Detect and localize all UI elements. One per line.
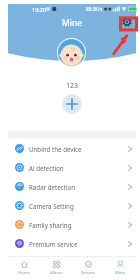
button[interactable]: Settings — [122, 17, 132, 27]
staticText: Ai detection — [29, 164, 64, 172]
staticText: Unbind the device — [29, 145, 82, 153]
button[interactable]: Camera Setting — [8, 196, 136, 215]
staticText: Camera Setting — [29, 202, 74, 210]
button[interactable]: Unbind the device — [8, 139, 136, 158]
button[interactable]: Mine — [104, 257, 136, 280]
staticText: Mine — [115, 270, 125, 276]
button[interactable]: Radar detection — [8, 177, 136, 196]
staticText: Mine — [62, 17, 82, 29]
staticText: Album — [50, 270, 63, 276]
button[interactable]: Home — [8, 257, 40, 280]
button[interactable]: Service — [72, 257, 104, 280]
staticText: 89.3K/s — [86, 6, 102, 12]
staticText: 123 — [66, 81, 79, 91]
button[interactable]: Add device — [62, 94, 82, 114]
button[interactable]: Album — [40, 257, 72, 280]
button[interactable]: Ai detection — [8, 158, 136, 177]
button[interactable]: Family sharing — [8, 215, 136, 234]
staticText: Premium service — [29, 240, 78, 248]
staticText: Service — [81, 270, 95, 276]
staticText: Radar detection — [29, 183, 76, 191]
staticText: Home — [18, 270, 30, 276]
staticText: Family sharing — [29, 221, 72, 229]
staticText: 10:20 — [32, 6, 47, 13]
button[interactable]: Premium service — [8, 234, 136, 253]
